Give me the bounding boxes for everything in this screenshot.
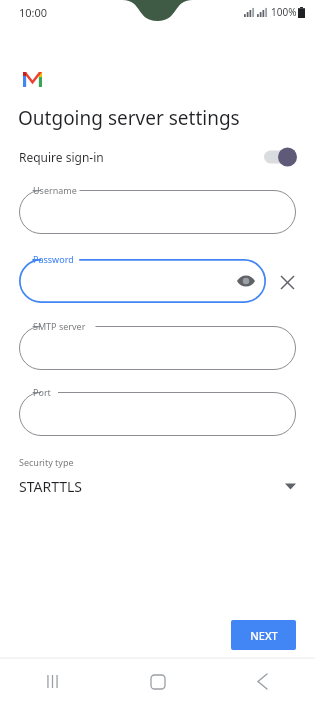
staticText: Security type bbox=[19, 456, 74, 468]
staticText: 100% bbox=[271, 5, 297, 19]
button[interactable]: Clear password bbox=[274, 269, 300, 295]
staticText: SMTP server bbox=[33, 320, 86, 332]
staticText: NEXT bbox=[250, 628, 278, 643]
button[interactable]: NEXT bbox=[231, 620, 296, 650]
button[interactable]: Security type bbox=[0, 450, 315, 502]
button[interactable]: Recents bbox=[0, 659, 105, 704]
button[interactable]: Password bbox=[19, 259, 266, 303]
button[interactable]: Home bbox=[105, 659, 210, 704]
button[interactable]: Back bbox=[210, 659, 315, 704]
staticText: STARTTLS bbox=[19, 477, 83, 496]
staticText: 10:00 bbox=[19, 5, 48, 20]
staticText: Username bbox=[33, 184, 77, 196]
button[interactable]: Require sign-in bbox=[0, 143, 315, 171]
button[interactable]: Username bbox=[19, 190, 296, 234]
button[interactable]: SMTP server bbox=[19, 326, 296, 370]
button[interactable]: Require sign-in toggle bbox=[264, 146, 296, 168]
button[interactable]: Port bbox=[19, 392, 296, 436]
button[interactable]: Show password bbox=[234, 269, 258, 293]
staticText: Port bbox=[33, 386, 51, 398]
staticText: Password bbox=[33, 253, 74, 265]
staticText: Outgoing server settings bbox=[18, 105, 240, 131]
staticText: Require sign-in bbox=[19, 149, 104, 165]
